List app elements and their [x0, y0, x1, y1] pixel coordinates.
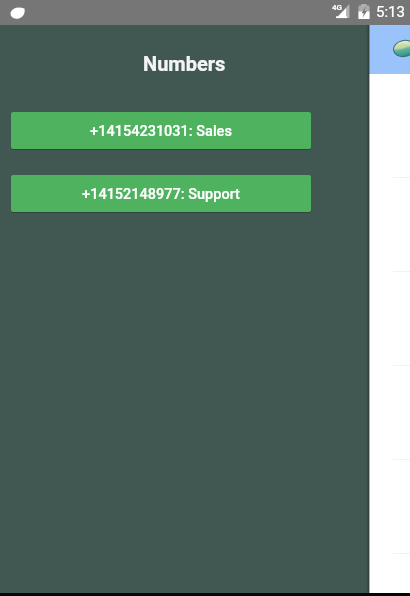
staticText: 5:13	[376, 3, 405, 21]
staticText: +14154231031: Sales	[90, 123, 232, 140]
button[interactable]: Globe	[369, 25, 410, 74]
button[interactable]	[369, 554, 410, 593]
button[interactable]	[369, 366, 410, 459]
other: Globe	[393, 40, 410, 57]
other: Signal strength 4G	[332, 4, 350, 19]
button[interactable]: +14154231031: Sales	[11, 112, 311, 149]
staticText: 4G	[332, 3, 342, 12]
staticText: +14152148977: Support	[82, 186, 240, 203]
other: Notification	[10, 7, 25, 19]
other: Battery charging	[358, 4, 370, 19]
button[interactable]	[369, 272, 410, 365]
staticText: Numbers	[143, 52, 226, 75]
button[interactable]	[369, 460, 410, 553]
button[interactable]: +14152148977: Support	[11, 175, 311, 212]
button[interactable]	[369, 178, 410, 271]
